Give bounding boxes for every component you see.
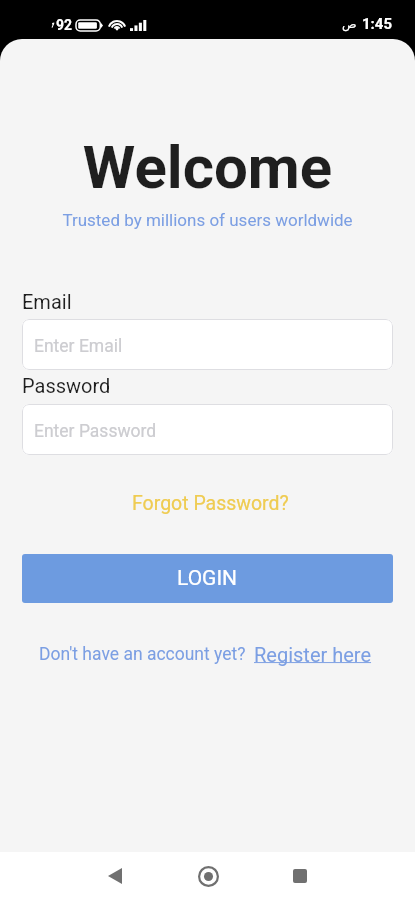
staticText: Enter Password [34, 421, 157, 442]
staticText: 92 [56, 17, 73, 33]
staticText: Email [22, 290, 72, 313]
staticText: Welcome [0, 132, 415, 202]
staticText: Password [22, 374, 111, 397]
button[interactable]: Home [182, 852, 234, 900]
staticText: 1:45 [362, 15, 393, 33]
button[interactable]: Register here [254, 643, 372, 666]
button[interactable]: Enter Password [22, 404, 393, 455]
button[interactable]: Back [89, 852, 141, 900]
staticText: Enter Email [34, 336, 123, 357]
staticText: Trusted by millions of users worldwide [0, 210, 415, 230]
button[interactable]: Enter Email [22, 319, 393, 370]
staticText: Forgot Password? [132, 492, 289, 515]
staticText: ص [342, 17, 357, 31]
staticText: Register here [254, 643, 372, 666]
staticText: LOGIN [177, 566, 238, 591]
button[interactable]: Forgot Password? [3, 488, 415, 518]
button[interactable]: LOGIN [22, 554, 393, 603]
staticText: Don't have an account yet? [39, 644, 246, 665]
button[interactable]: Recent apps [274, 852, 326, 900]
